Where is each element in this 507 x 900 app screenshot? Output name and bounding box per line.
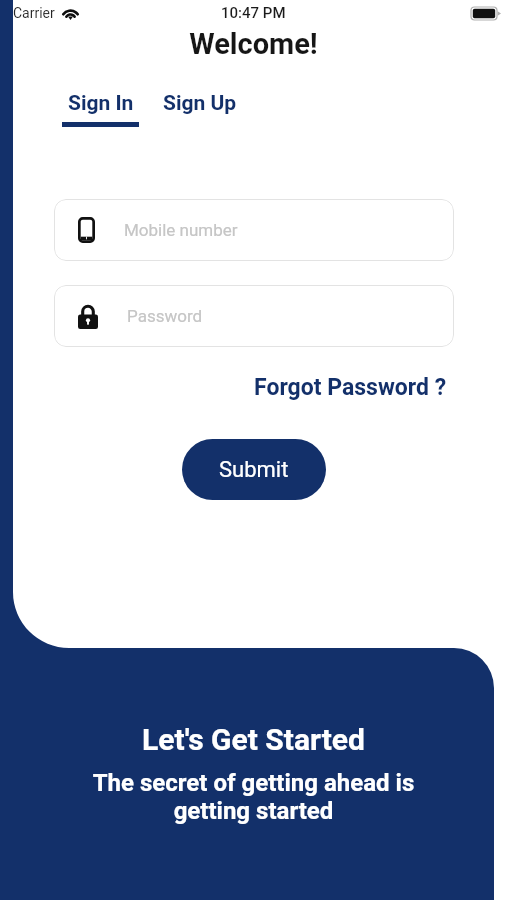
other: Wi-Fi [61,7,80,20]
button[interactable]: Password [54,285,454,347]
other: Battery [471,7,501,20]
staticText: Submit [219,457,289,483]
staticText: 10:47 PM [221,4,286,22]
staticText: Carrier [13,5,55,21]
button[interactable]: Sign Up [163,91,237,116]
button[interactable]: Forgot Password ? [251,370,450,405]
staticText: Mobile number [124,220,238,240]
other: Mobile number [78,217,95,243]
other: Password [78,304,98,329]
button[interactable]: Submit [182,439,326,500]
staticText: Password [127,306,203,326]
staticText: Let's Get Started [0,722,507,757]
staticText: Forgot Password ? [254,374,447,401]
staticText: Sign In [68,91,134,116]
staticText: Welcome! [0,27,507,61]
button[interactable]: Sign In [62,91,139,127]
staticText: The secret of getting ahead is getting s… [78,769,429,825]
staticText: Sign Up [163,91,237,116]
button[interactable]: Mobile number [54,199,454,261]
